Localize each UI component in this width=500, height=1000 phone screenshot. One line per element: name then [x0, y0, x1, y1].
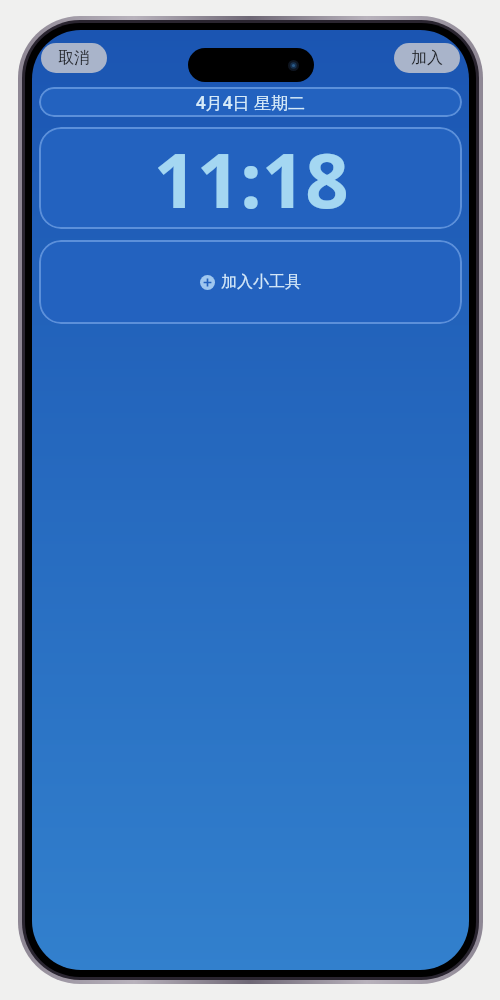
button[interactable]: 加入 [394, 43, 460, 73]
staticText: 加入 [411, 48, 443, 68]
button[interactable]: 11:18 [39, 127, 462, 229]
staticText: 加入小工具 [221, 272, 301, 292]
other: Add widget [200, 275, 215, 290]
staticText: 4月4日 星期二 [196, 91, 305, 114]
staticText: 取消 [58, 48, 90, 68]
button[interactable]: Add widget [39, 240, 462, 324]
button[interactable]: 取消 [41, 43, 107, 73]
button[interactable]: 4月4日 星期二 [39, 87, 462, 117]
staticText: 11:18 [153, 127, 349, 229]
